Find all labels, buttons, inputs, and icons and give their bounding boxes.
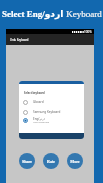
staticText: Share: [22, 159, 32, 163]
staticText: Keyboard: [64, 9, 102, 19]
staticText: Urdu Keyboard: [33, 121, 50, 124]
staticText: Select Eng/اردو: [2, 9, 64, 19]
button[interactable]: Eng/اردو: [19, 115, 84, 125]
staticText: More: [70, 159, 80, 163]
staticText: Urdu Keyboard: [10, 38, 29, 42]
button[interactable]: Gboard: [19, 97, 84, 107]
staticText: Rate: [47, 159, 55, 163]
button[interactable]: Rate: [43, 153, 59, 169]
staticText: Select keyboard: [24, 91, 45, 95]
button[interactable]: More: [67, 153, 83, 169]
button[interactable]: Samsung Keyboard: [19, 107, 84, 117]
staticText: Gboard: [33, 100, 44, 104]
staticText: Samsung Keyboard: [33, 110, 61, 114]
button[interactable]: Share: [19, 153, 35, 169]
staticText: 100%: [84, 30, 92, 34]
staticText: Eng/اردو: [33, 117, 45, 121]
